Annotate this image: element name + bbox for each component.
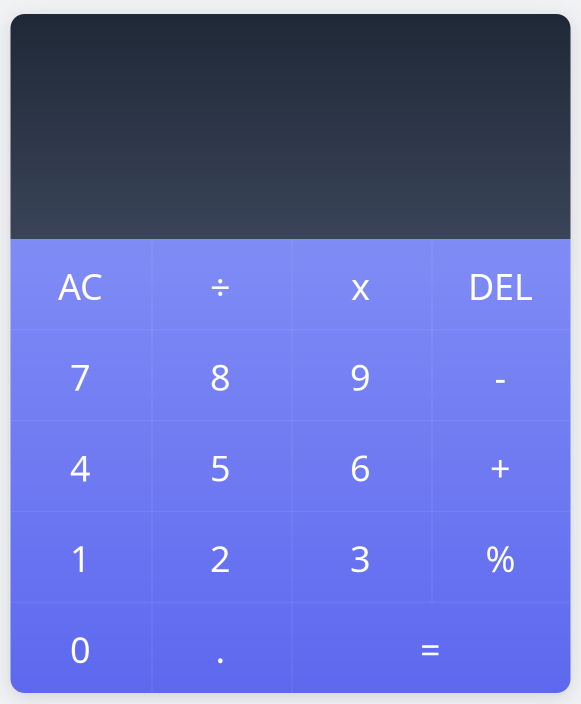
staticText: 6 [350, 444, 371, 491]
staticText: 2 [210, 534, 231, 582]
staticText: ÷ [210, 262, 231, 310]
staticText: x [351, 262, 370, 310]
staticText: 9 [350, 353, 371, 401]
button[interactable]: 2 [150, 511, 290, 602]
staticText: 4 [70, 444, 91, 491]
button[interactable]: 1 [10, 511, 150, 602]
staticText: - [494, 353, 506, 401]
button[interactable]: 5 [150, 421, 290, 511]
button[interactable]: + [430, 421, 570, 511]
staticText: 1 [70, 534, 91, 582]
button[interactable]: % [430, 511, 570, 602]
button[interactable]: 9 [290, 330, 430, 421]
button[interactable]: 7 [10, 330, 150, 421]
button[interactable]: 4 [10, 421, 150, 511]
button[interactable]: ÷ [150, 239, 290, 330]
button[interactable]: 0 [10, 602, 150, 693]
staticText: . [215, 625, 225, 673]
button[interactable]: 8 [150, 330, 290, 421]
button[interactable]: = [290, 602, 570, 693]
button[interactable]: 3 [290, 511, 430, 602]
staticText: 3 [350, 534, 371, 582]
staticText: + [490, 444, 511, 491]
button[interactable]: . [150, 602, 290, 693]
staticText: 8 [210, 353, 231, 401]
button[interactable]: x [290, 239, 430, 330]
button[interactable]: AC [10, 239, 150, 330]
staticText: AC [58, 262, 103, 310]
staticText: % [485, 534, 515, 582]
staticText: = [420, 625, 441, 673]
staticText: DEL [468, 262, 533, 310]
button[interactable]: - [430, 330, 570, 421]
staticText: 5 [210, 444, 231, 491]
staticText: 0 [70, 625, 91, 673]
button[interactable]: 6 [290, 421, 430, 511]
staticText: 7 [70, 353, 91, 401]
button[interactable]: DEL [430, 239, 570, 330]
